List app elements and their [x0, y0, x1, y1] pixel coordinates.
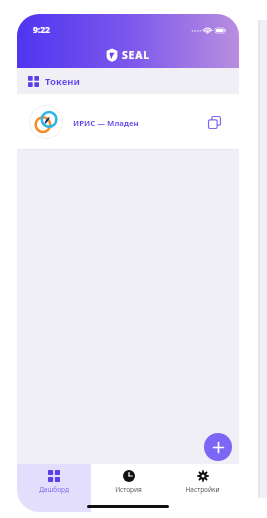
button[interactable]: ИРИС — Младен	[17, 94, 239, 149]
button[interactable]: История	[91, 464, 165, 512]
staticText: SEAL	[122, 48, 151, 62]
staticText: 9:22	[33, 24, 50, 36]
staticText: Настройки	[185, 485, 220, 494]
staticText: История	[115, 485, 142, 494]
staticText: ИРИС — Младен	[73, 118, 139, 129]
staticText: Токени	[45, 75, 80, 88]
button[interactable]: Дашборд	[17, 464, 91, 512]
staticText: Дашборд	[39, 485, 69, 494]
button[interactable]: Copy token	[201, 109, 227, 135]
button[interactable]: Настройки	[165, 464, 239, 512]
button[interactable]: Add token	[204, 433, 232, 461]
